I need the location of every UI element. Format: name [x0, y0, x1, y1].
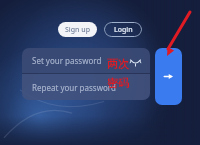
staticText: Sign up — [65, 25, 91, 35]
staticText: Login — [114, 25, 133, 35]
staticText: 密码 — [107, 76, 129, 90]
button[interactable]: Set your password — [22, 48, 150, 73]
button[interactable]: Sign up — [58, 22, 97, 37]
button[interactable]: Submit — [155, 48, 182, 105]
staticText: Repeat your password — [32, 82, 116, 93]
button[interactable]: Repeat your password — [22, 74, 150, 100]
staticText: 两次 — [107, 57, 129, 71]
button[interactable]: Login — [104, 22, 142, 37]
staticText: Set your password — [32, 55, 102, 66]
button[interactable]: Show password — [128, 54, 142, 68]
